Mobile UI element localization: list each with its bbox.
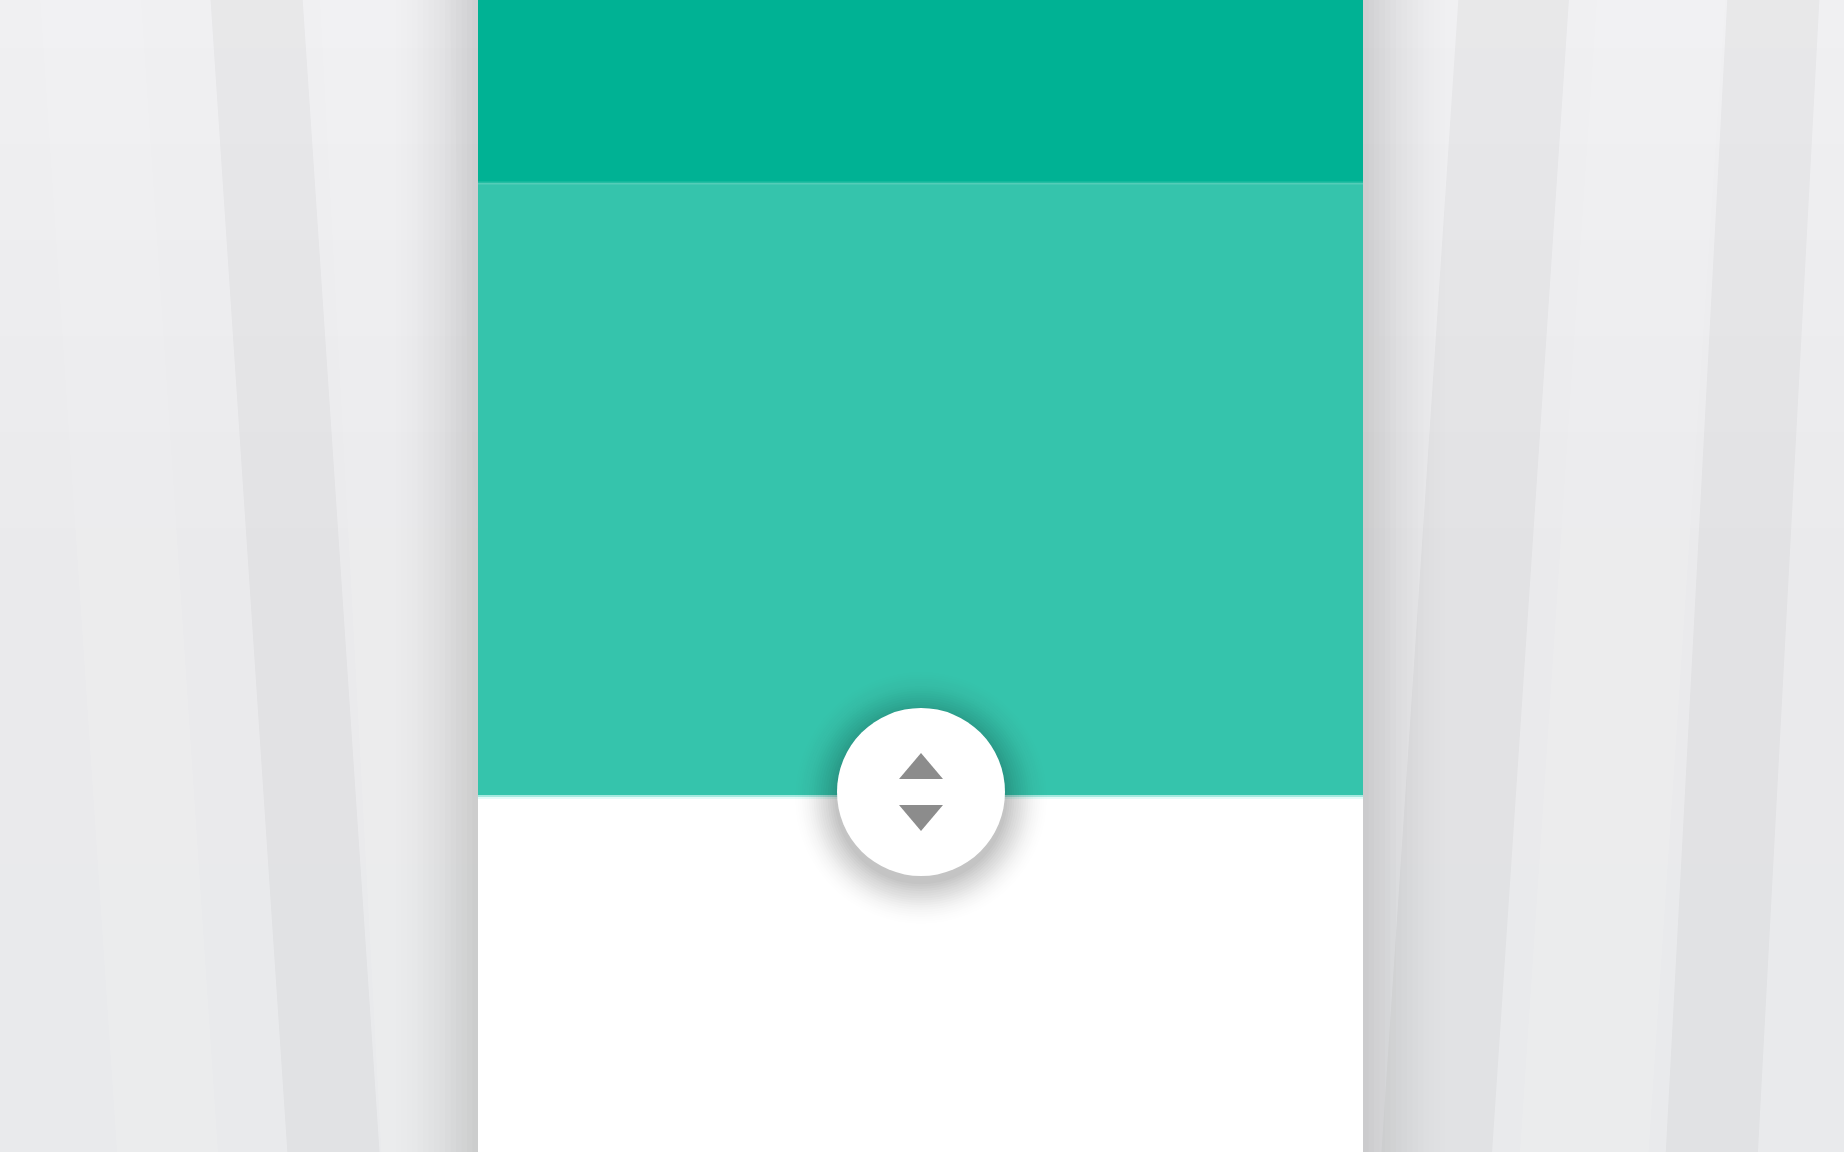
button[interactable]: Top app bar: [478, 0, 1363, 183]
button[interactable]: Expand or collapse: [837, 708, 1005, 876]
